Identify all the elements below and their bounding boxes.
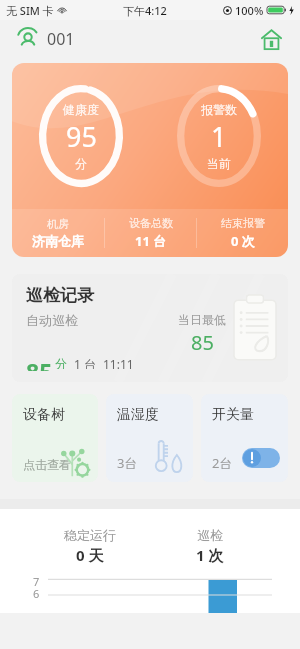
button[interactable]: 机房 — [12, 217, 104, 249]
button[interactable]: Home — [256, 24, 286, 54]
button[interactable]: 稳定运行 — [30, 527, 150, 565]
staticText: 95 — [66, 118, 97, 155]
button[interactable]: Account 001 — [14, 25, 42, 53]
staticText: 85 — [26, 356, 53, 371]
button[interactable]: 结束报警 — [197, 216, 288, 250]
staticText: 2台 — [212, 454, 233, 472]
staticText: 1 台 — [74, 356, 96, 369]
staticText: 当日最低 — [178, 312, 226, 327]
staticText: 1 — [211, 118, 227, 155]
staticText: 100% — [235, 3, 264, 18]
staticText: 健康度 — [63, 102, 99, 117]
button[interactable]: 健康度 — [12, 70, 150, 202]
staticText: 结束报警 — [221, 216, 265, 230]
staticText: 设备树 — [23, 406, 65, 424]
staticText: 无 SIM 卡 — [6, 3, 54, 18]
staticText: 巡检记录 — [26, 285, 94, 306]
staticText: 下午4:12 — [123, 3, 167, 18]
button[interactable]: 巡检 — [150, 527, 270, 565]
button[interactable]: 设备总数 — [105, 216, 196, 250]
staticText: 济南仓库 — [32, 233, 84, 249]
staticText: 机房 — [47, 217, 69, 231]
button[interactable]: 巡检记录 — [12, 274, 288, 382]
staticText: 设备总数 — [129, 216, 173, 230]
button[interactable]: 温湿度 — [106, 394, 193, 482]
staticText: 3台 — [117, 454, 138, 472]
button[interactable]: 设备树 — [12, 394, 98, 482]
staticText: 7 — [33, 574, 40, 589]
staticText: 当前 — [207, 156, 231, 171]
staticText: 85 — [191, 329, 214, 356]
staticText: 6 — [33, 586, 40, 601]
button[interactable]: 开关量 — [201, 394, 288, 482]
staticText: 11 台 — [135, 232, 167, 250]
staticText: 分 — [55, 356, 67, 369]
staticText: 稳定运行 — [64, 527, 116, 543]
staticText: 001 — [47, 28, 75, 50]
staticText: 温湿度 — [117, 406, 159, 424]
staticText: 0 天 — [76, 545, 104, 565]
staticText: 自动巡检 — [26, 312, 78, 328]
staticText: 巡检 — [197, 527, 223, 543]
staticText: 11:11 — [103, 356, 134, 369]
staticText: 0 次 — [231, 232, 255, 250]
staticText: 分 — [75, 156, 87, 171]
staticText: 报警数 — [201, 102, 237, 117]
staticText: 开关量 — [212, 406, 254, 424]
staticText: 点击查看 — [23, 457, 71, 472]
button[interactable]: 报警数 — [150, 70, 288, 202]
staticText: 1 次 — [196, 545, 224, 565]
button[interactable]: 健康度 — [12, 63, 288, 257]
